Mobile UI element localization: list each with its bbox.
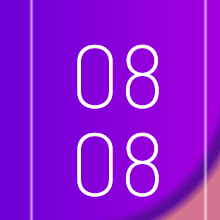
staticText: 08 xyxy=(70,108,165,214)
staticText: 08 xyxy=(70,20,165,126)
